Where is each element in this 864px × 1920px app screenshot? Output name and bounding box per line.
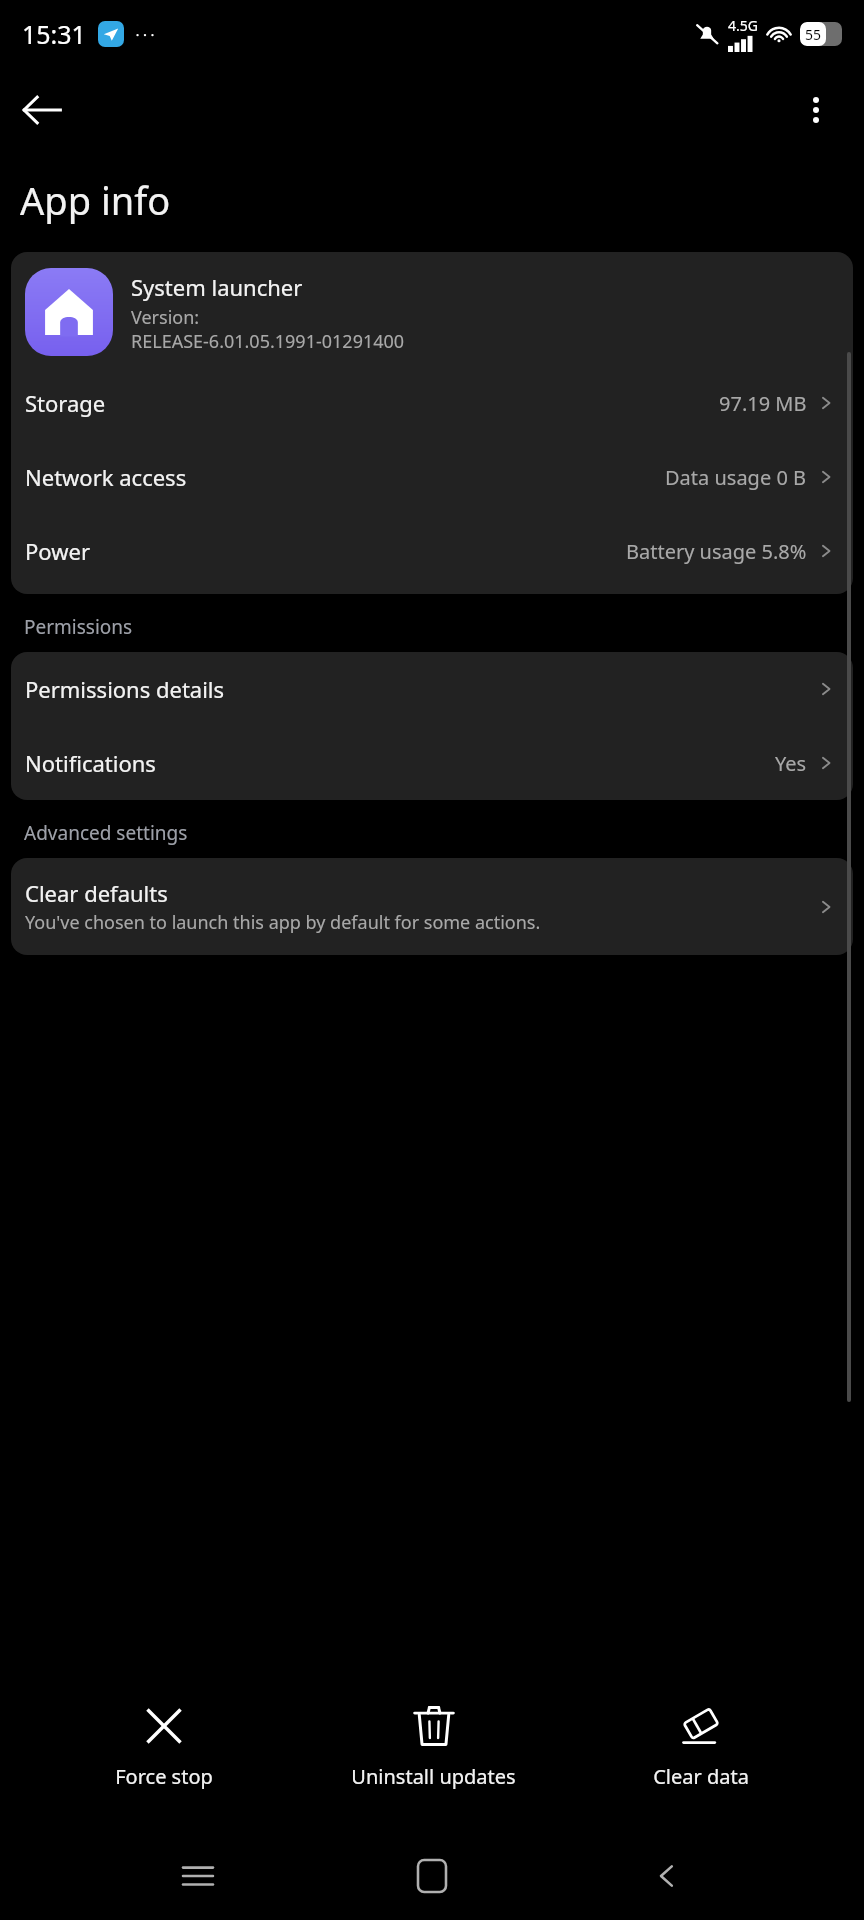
button[interactable]: Clear defaults [11,858,853,955]
staticText: Network access [25,462,665,492]
staticText: 15:31 [22,17,86,51]
button[interactable]: Back [0,68,84,152]
staticText: Power [25,536,626,566]
button[interactable]: Recents [161,1839,235,1913]
staticText: Clear defaults [25,878,168,908]
other: Force stop [141,1703,187,1749]
button[interactable]: Uninstall updates [329,1695,538,1798]
staticText: Advanced settings [24,820,188,846]
staticText: Permissions details [25,674,815,704]
button[interactable]: More options [774,68,858,152]
staticText: Battery usage 5.8% [626,538,807,565]
staticText: Yes [775,750,807,777]
staticText: Data usage 0 B [665,464,807,491]
staticText: 97.19 MB [719,390,807,417]
button[interactable]: Back [630,1839,704,1913]
staticText: 4.5G [728,16,758,35]
staticText: Force stop [115,1763,213,1790]
button[interactable]: Home [395,1839,469,1913]
other: Uninstall updates [411,1703,457,1749]
staticText: App info [20,174,171,226]
staticText: Storage [25,388,719,418]
staticText: Uninstall updates [351,1763,516,1790]
staticText: System launcher [131,272,303,302]
button[interactable]: Permissions details [11,652,853,726]
button[interactable]: Power [11,514,853,588]
staticText: Version: RELEASE-6.01.05.1991-01291400 [131,305,405,353]
button[interactable]: Network access [11,440,853,514]
button[interactable]: Storage [11,366,853,440]
staticText: Permissions [24,614,133,640]
staticText: You've chosen to launch this app by defa… [25,910,541,935]
other: Clear data [678,1703,724,1749]
staticText: Notifications [25,748,775,778]
staticText: 55 [805,25,822,44]
button[interactable]: Notifications [11,726,853,800]
staticText: Clear data [653,1763,749,1790]
button[interactable]: Clear data [631,1695,771,1798]
button[interactable]: Force stop [93,1695,235,1798]
